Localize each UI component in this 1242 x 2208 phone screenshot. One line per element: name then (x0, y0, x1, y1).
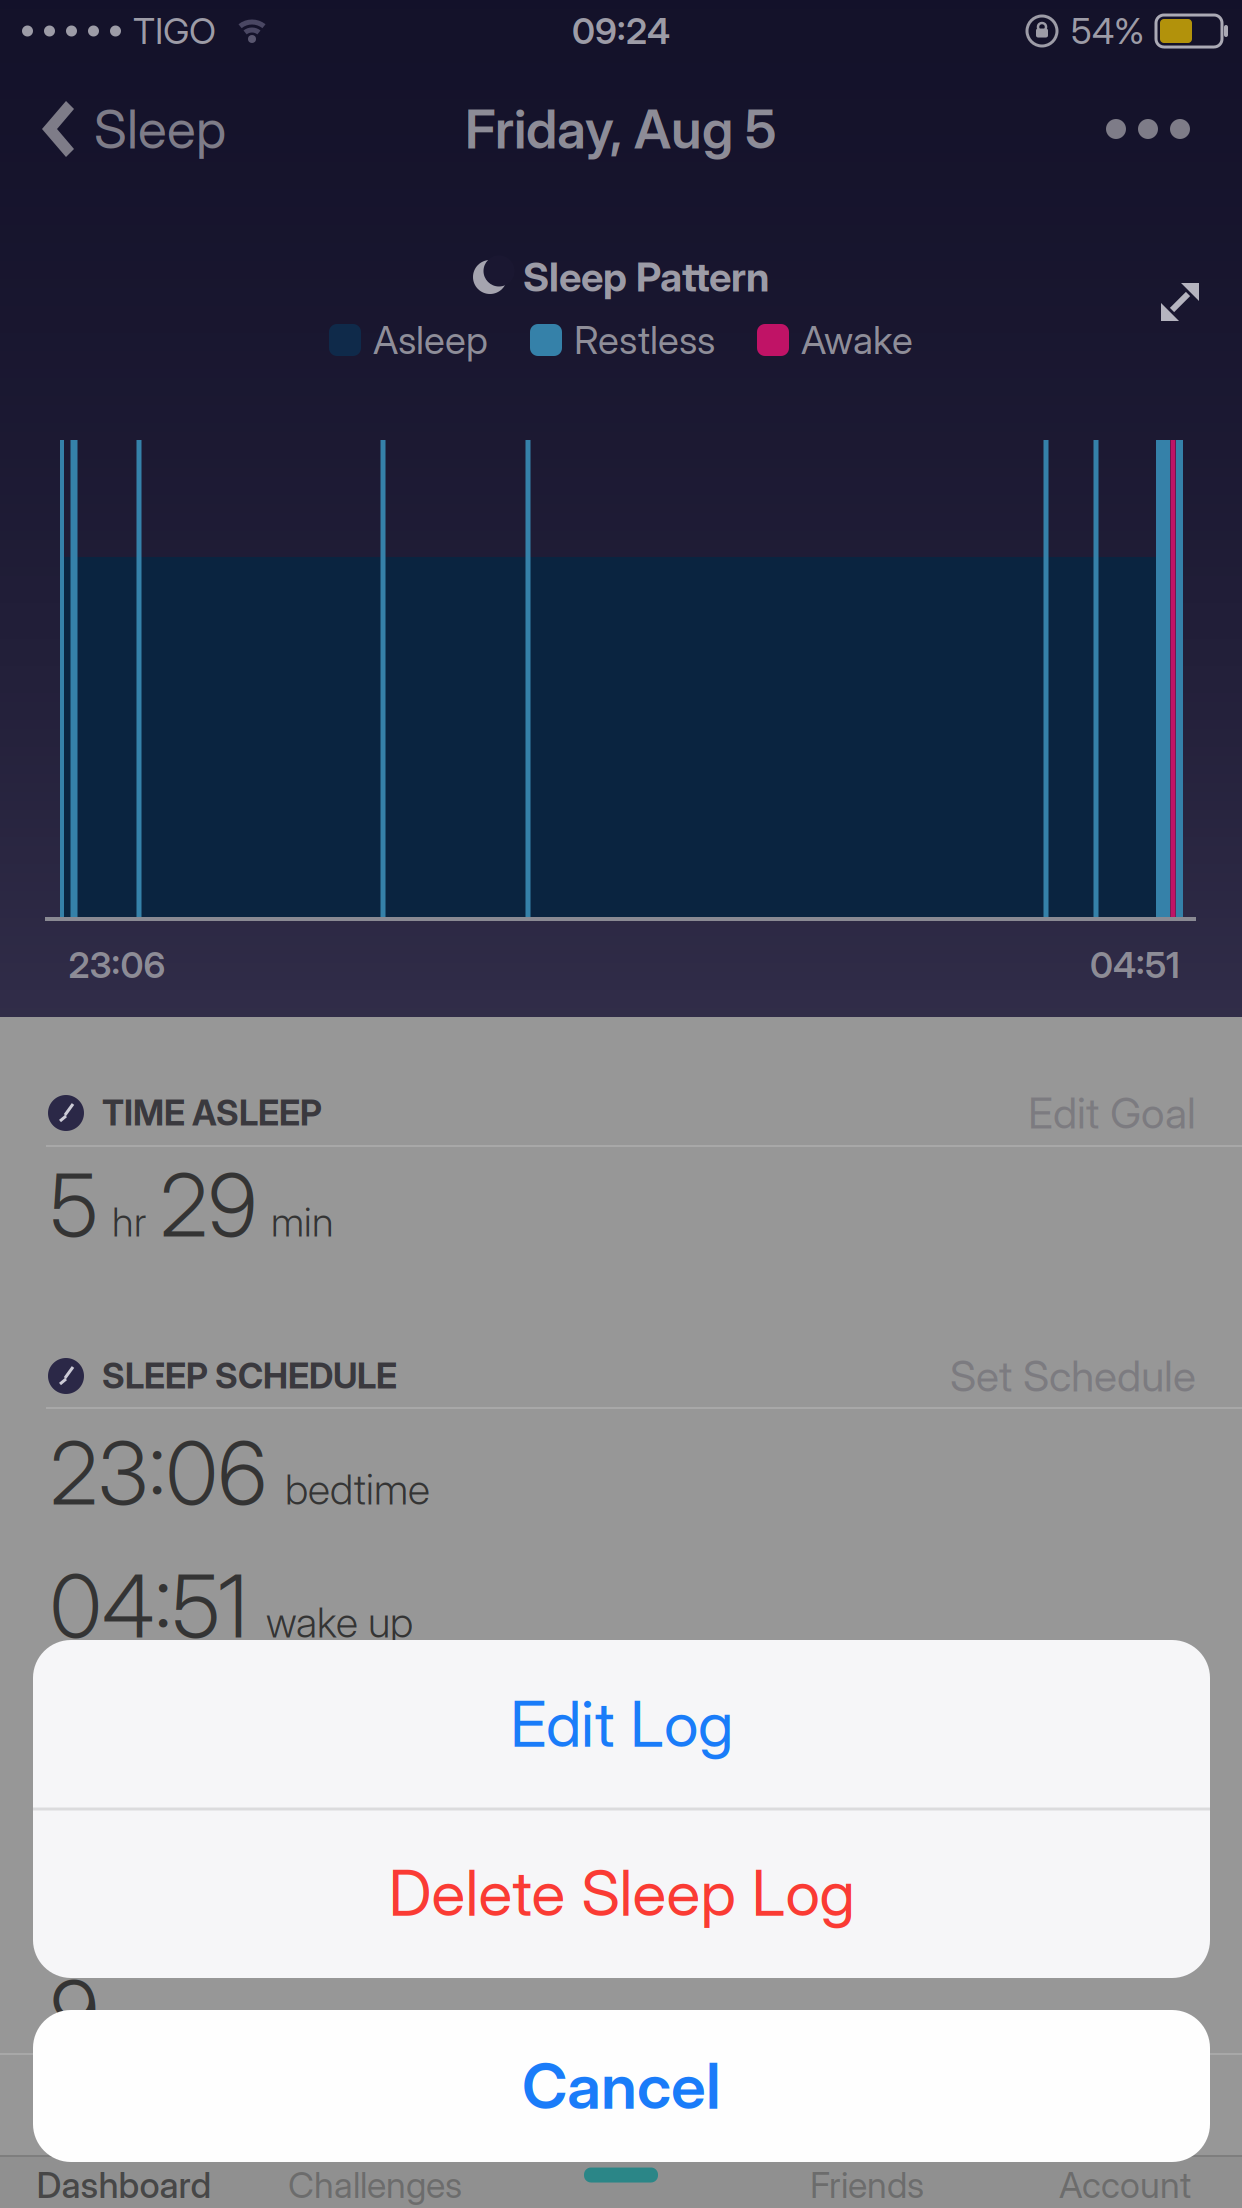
staticText: bedtime (285, 1465, 430, 1514)
button[interactable]: Cancel (33, 2010, 1210, 2162)
staticText: Set Schedule (950, 1351, 1196, 1401)
staticText: 54% (1071, 10, 1144, 52)
button[interactable]: Dashboard (19, 2162, 229, 2208)
staticText: Restless (574, 317, 715, 363)
staticText: hr (112, 1198, 146, 1246)
staticText: Awake (801, 317, 913, 363)
button[interactable]: Set Schedule (950, 1346, 1196, 1406)
button[interactable] (1106, 103, 1190, 155)
staticText: Sleep Pattern (523, 253, 769, 301)
button[interactable]: Edit Log (33, 1641, 1210, 1807)
staticText: 23:06 (68, 944, 165, 986)
button[interactable]: Challenges (270, 2162, 480, 2208)
staticText: 09:24 (572, 10, 670, 52)
staticText: 04:51 (1090, 944, 1180, 986)
button[interactable]: Account (1020, 2162, 1230, 2208)
button[interactable] (1159, 281, 1201, 323)
staticText: TIGO (133, 10, 216, 52)
staticText: TIME ASLEEP (102, 1093, 322, 1133)
button[interactable]: Sleep (38, 97, 226, 160)
staticText: Asleep (373, 317, 488, 363)
staticText: Friday, Aug 5 (465, 97, 777, 160)
staticText: min (271, 1198, 334, 1246)
staticText: Friends (810, 2164, 924, 2206)
staticText: 9 (50, 1961, 99, 2063)
staticText: Cancel (522, 2049, 721, 2123)
staticText: Account (1059, 2164, 1191, 2206)
staticText: Challenges (288, 2164, 462, 2206)
staticText: Sleep (94, 97, 226, 160)
staticText: 04:51 (50, 1555, 248, 1657)
staticText: Delete Sleep Log (388, 1856, 854, 1930)
staticText: SLEEP SCHEDULE (102, 1356, 397, 1396)
button[interactable] (546, 2160, 696, 2206)
staticText: times restless (117, 2004, 355, 2053)
staticText: 23:06 (50, 1422, 267, 1524)
staticText: Edit Log (510, 1687, 733, 1761)
staticText: 29 (160, 1154, 257, 1256)
staticText: Edit Goal (1028, 1088, 1196, 1138)
staticText: 5 (50, 1154, 98, 1256)
staticText: Dashboard (36, 2164, 211, 2206)
button[interactable]: Edit Goal (1028, 1083, 1196, 1143)
staticText: wake up (266, 1598, 413, 1647)
button[interactable]: Delete Sleep Log (33, 1810, 1210, 1976)
button[interactable]: Friends (762, 2162, 972, 2208)
